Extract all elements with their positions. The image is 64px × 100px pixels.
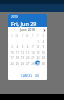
staticText: 9 xyxy=(42,45,44,49)
staticText: 20 xyxy=(26,56,30,60)
staticText: 17 xyxy=(10,56,14,60)
staticText: June 2018 xyxy=(14,28,41,32)
staticText: 26 xyxy=(20,62,24,66)
staticText: M xyxy=(15,34,18,38)
staticText: 6 xyxy=(27,45,29,49)
staticText: 22 xyxy=(36,56,40,60)
staticText: 15 xyxy=(36,50,40,54)
staticText: 30 xyxy=(41,62,45,66)
staticText: 19 xyxy=(20,56,24,60)
staticText: 24 xyxy=(10,62,14,66)
staticText: 18 xyxy=(15,56,19,60)
staticText: S xyxy=(42,34,44,38)
staticText: 29 xyxy=(36,62,40,66)
staticText: 7 xyxy=(32,45,34,49)
staticText: T xyxy=(32,34,34,38)
button[interactable]: CANCEL xyxy=(20,72,34,80)
staticText: T xyxy=(21,34,23,38)
staticText: 11 xyxy=(15,50,19,54)
staticText: F xyxy=(37,34,39,38)
staticText: 14 xyxy=(31,50,35,54)
staticText: 16 xyxy=(41,50,45,54)
staticText: 8 xyxy=(37,45,39,49)
button[interactable]: Next month xyxy=(41,27,47,33)
staticText: OK xyxy=(35,74,40,78)
staticText: Fri, Jun 29 xyxy=(11,20,37,27)
staticText: 27 xyxy=(26,62,30,66)
staticText: 13 xyxy=(26,50,30,54)
staticText: 23 xyxy=(41,56,45,60)
staticText: 4 xyxy=(16,45,18,49)
staticText: CANCEL xyxy=(21,74,33,78)
staticText: 28 xyxy=(31,62,35,66)
staticText: 12 xyxy=(20,50,24,54)
staticText: 25 xyxy=(15,62,19,66)
staticText: 2018 xyxy=(11,15,19,19)
staticText: S xyxy=(11,34,13,38)
staticText: W xyxy=(26,34,29,38)
staticText: 3 xyxy=(11,45,13,49)
button[interactable]: OK xyxy=(34,72,41,80)
staticText: 2 xyxy=(42,39,44,43)
staticText: 1 xyxy=(37,39,39,43)
staticText: 5 xyxy=(21,45,23,49)
staticText: 10 xyxy=(10,50,14,54)
staticText: 21 xyxy=(31,56,35,60)
